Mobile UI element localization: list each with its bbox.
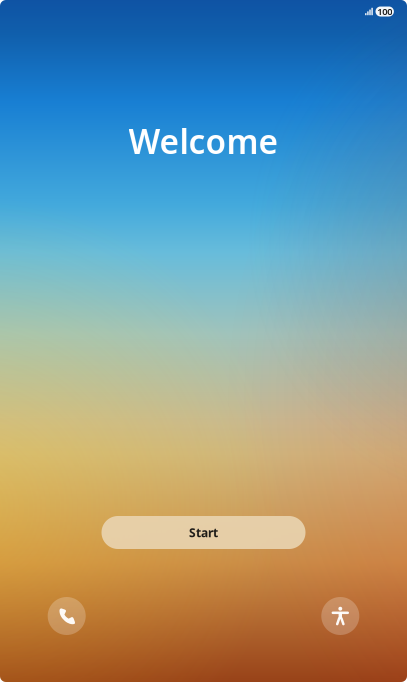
button[interactable]: Start [101, 516, 305, 549]
button[interactable]: Call [48, 597, 86, 635]
staticText: Welcome [128, 119, 278, 163]
staticText: Start [189, 524, 218, 540]
button[interactable]: Accessibility [321, 597, 359, 635]
staticText: 100 [377, 5, 392, 18]
